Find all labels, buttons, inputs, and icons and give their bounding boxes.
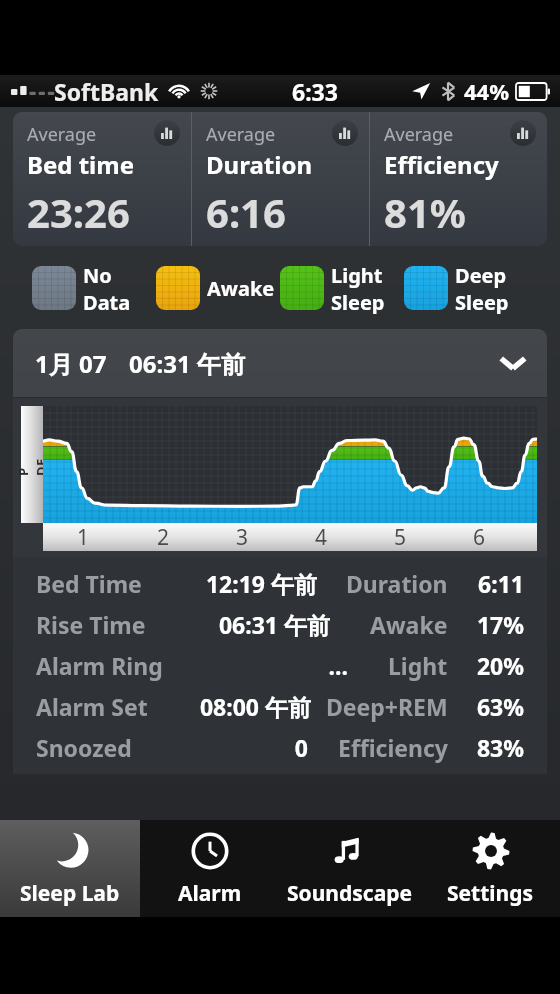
staticText: Snoozed <box>36 732 132 763</box>
staticText: 0 <box>158 732 308 763</box>
staticText: 20% <box>462 650 524 681</box>
staticText: Bed Time <box>36 568 142 599</box>
staticText: 83% <box>462 732 524 763</box>
staticText: 6 <box>473 523 486 551</box>
staticText: 1月 07 <box>35 347 107 380</box>
staticText: 2 <box>157 523 170 551</box>
staticText: Alarm Set <box>36 691 148 722</box>
staticText: SoftBank <box>54 76 159 107</box>
staticText: Bed time <box>27 148 135 181</box>
other: Collapse <box>499 354 527 372</box>
staticText: Sleep <box>331 289 385 314</box>
staticText: 81% <box>384 185 466 239</box>
button[interactable]: Snoozed <box>13 727 547 768</box>
staticText: Sleep Lab <box>20 879 120 908</box>
staticText: Sleep <box>455 289 509 314</box>
staticText: 44% <box>464 76 510 106</box>
staticText: Deep+REM <box>326 691 448 722</box>
staticText: Alarm <box>178 879 242 908</box>
staticText: Average <box>27 122 97 147</box>
button[interactable]: Light <box>280 262 404 314</box>
staticText: Deep <box>455 262 507 289</box>
staticText: Average <box>384 122 454 147</box>
staticText: Awake <box>370 609 448 640</box>
button[interactable]: Awake <box>156 262 280 314</box>
staticText: 17% <box>462 609 524 640</box>
button[interactable]: 1月 07 <box>13 329 547 397</box>
staticText: Alarm Ring <box>36 650 163 681</box>
staticText: 63% <box>462 691 524 722</box>
staticText: Settings <box>447 879 534 908</box>
staticText: 6:33 <box>292 76 338 107</box>
staticText: Duration <box>346 568 448 599</box>
button[interactable]: Deep <box>404 262 528 314</box>
staticText: 1 <box>77 523 90 551</box>
button[interactable]: Bed Time <box>13 563 547 604</box>
staticText: 4 <box>315 523 328 551</box>
button[interactable]: Soundscape <box>280 820 420 917</box>
staticText: SLEEP DEPTH <box>13 454 86 476</box>
staticText: Efficiency <box>384 148 499 181</box>
staticText: Awake <box>207 275 275 302</box>
staticText: Duration <box>206 148 312 181</box>
staticText: 08:00 午前 <box>161 691 311 722</box>
staticText: 23:26 <box>27 185 130 239</box>
staticText: 12:19 午前 <box>167 568 317 599</box>
staticText: Data <box>83 289 131 314</box>
button[interactable]: Average <box>13 112 191 246</box>
button[interactable]: Sleep Lab <box>0 820 140 917</box>
staticText: 5 <box>394 523 407 551</box>
button[interactable]: Rise Time <box>13 604 547 645</box>
button[interactable]: Average <box>370 112 547 246</box>
button[interactable]: Alarm Ring <box>13 645 547 686</box>
staticText: 06:31 午前 <box>129 347 245 380</box>
button[interactable]: Average <box>192 112 369 246</box>
staticText: ... <box>198 650 348 681</box>
staticText: Efficiency <box>338 732 448 763</box>
staticText: No <box>83 262 112 289</box>
staticText: Soundscape <box>287 879 413 908</box>
button[interactable]: Settings <box>420 820 560 917</box>
staticText: Average <box>206 122 276 147</box>
staticText: 6:16 <box>206 185 286 239</box>
staticText: Light <box>331 262 383 289</box>
staticText: Rise Time <box>36 609 146 640</box>
staticText: Light <box>388 650 448 681</box>
button[interactable]: Alarm <box>140 820 280 917</box>
staticText: 06:31 午前 <box>180 609 330 640</box>
staticText: 3 <box>236 523 249 551</box>
button[interactable]: No <box>32 262 156 314</box>
button[interactable]: Alarm Set <box>13 686 547 727</box>
staticText: 6:11 <box>462 568 524 599</box>
